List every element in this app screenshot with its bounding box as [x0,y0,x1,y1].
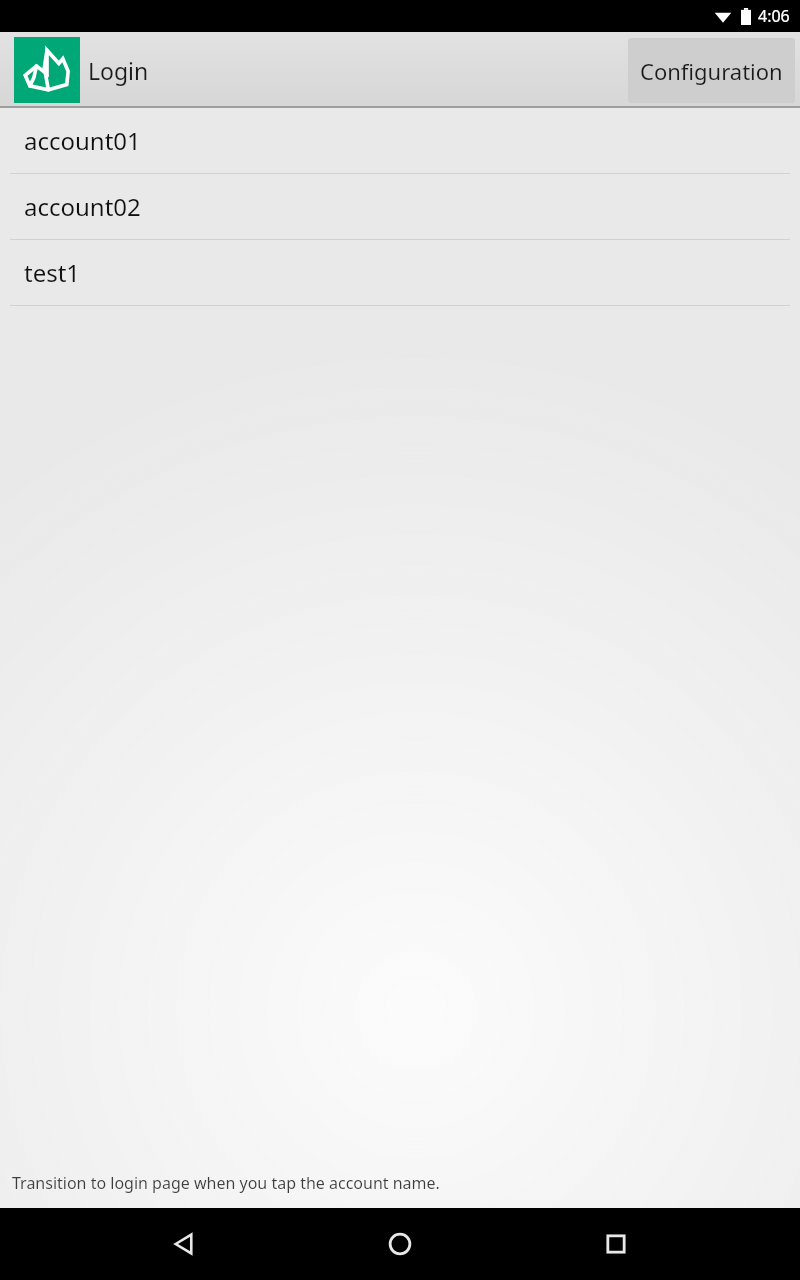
other: App icon [14,37,80,103]
staticText: test1 [24,256,81,289]
button[interactable]: test1 [0,240,800,305]
staticText: Login [88,55,149,86]
staticText: account01 [24,124,141,157]
button[interactable]: Home [368,1212,432,1276]
staticText: 4:06 [758,5,790,27]
staticText: Transition to login page when you tap th… [12,1172,440,1194]
button[interactable]: account02 [0,174,800,239]
staticText: account02 [24,190,141,223]
button[interactable]: Recent apps [584,1212,648,1276]
button[interactable]: Configuration [628,38,795,103]
button[interactable]: account01 [0,108,800,173]
button[interactable]: Back [152,1212,216,1276]
staticText: Configuration [640,56,783,86]
